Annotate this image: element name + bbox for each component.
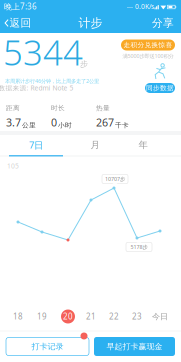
button[interactable]: 7日 [8, 133, 64, 156]
staticText: 计步 [78, 16, 102, 30]
staticText: 时长 [51, 104, 65, 112]
button[interactable]: 22 [103, 308, 125, 325]
staticText: 5344 [3, 29, 83, 75]
button[interactable]: 21 [80, 308, 102, 325]
button[interactable]: 打卡记录 [6, 337, 89, 355]
staticText: 年 [138, 139, 147, 151]
staticText: 7日 [29, 139, 43, 151]
button[interactable]: 19 [31, 308, 53, 325]
staticText: 22 [109, 311, 119, 322]
staticText: 5178步 [130, 243, 147, 251]
staticText: 10707步 [105, 175, 125, 183]
staticText: 走积分兑换惊喜 [123, 41, 172, 49]
staticText: 同步数据 [146, 84, 174, 92]
staticText: 本周累计步行46分钟，比上周多走了2公里 [5, 77, 99, 85]
button[interactable]: 分享 [148, 13, 178, 33]
button[interactable]: 同步数据 [145, 83, 175, 93]
staticText: 0.0K/s [133, 2, 154, 11]
staticText: 105 [7, 162, 19, 170]
staticText: 20 [63, 311, 73, 322]
button[interactable]: 年 [115, 133, 171, 156]
staticText: 晚上7:36 [4, 1, 37, 12]
button[interactable]: 18 [7, 308, 29, 325]
staticText: 21 [86, 311, 96, 322]
staticText: 3.7 [6, 115, 21, 129]
staticText: 23 [132, 311, 142, 322]
staticText: 步 [80, 59, 88, 69]
staticText: 满5000步即送100积分 [122, 52, 173, 60]
button[interactable]: 今日 [149, 308, 171, 325]
staticText: 早起打卡赢现金 [106, 342, 162, 351]
staticText: 分享 [152, 16, 174, 29]
staticText: 千卡 [115, 121, 129, 129]
button[interactable]: 走积分兑换惊喜 [121, 39, 175, 50]
staticText: 0 [51, 115, 57, 129]
staticText: 今日 [152, 312, 168, 321]
staticText: 热量 [96, 104, 110, 112]
button[interactable]: 月 [67, 133, 123, 156]
staticText: 月 [90, 139, 99, 151]
button[interactable]: 23 [126, 308, 148, 325]
staticText: 267 [96, 115, 114, 129]
staticText: 19 [37, 311, 47, 322]
button[interactable]: 返回 [0, 13, 35, 33]
button[interactable]: 20 [57, 308, 79, 325]
button[interactable]: 早起打卡赢现金 [94, 337, 175, 356]
staticText: 打卡记录 [31, 342, 63, 351]
staticText: 距离 [6, 104, 20, 112]
staticText: 小时 [58, 121, 72, 129]
staticText: 公里 [22, 121, 36, 129]
staticText: 18 [13, 311, 23, 322]
staticText: 数据来源: Redmi Note 5 [0, 84, 73, 92]
staticText: 返回 [9, 16, 31, 29]
